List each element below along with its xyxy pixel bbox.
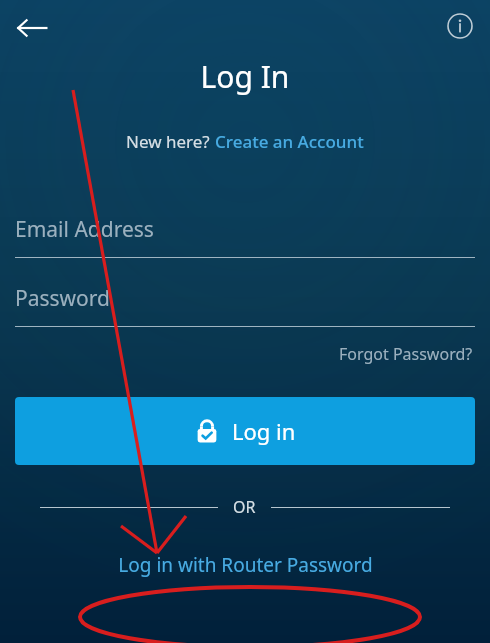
button[interactable]: Log in xyxy=(15,397,475,465)
button[interactable]: Information xyxy=(436,2,484,50)
staticText: Forgot Password? xyxy=(339,343,473,365)
staticText: Log in xyxy=(232,416,296,446)
button[interactable]: Back xyxy=(6,2,58,54)
button[interactable]: Email Address xyxy=(0,215,490,258)
button[interactable]: Password xyxy=(0,284,490,327)
staticText: Email Address xyxy=(15,215,154,244)
staticText: Password xyxy=(15,284,110,313)
staticText: New here? xyxy=(126,130,215,153)
button[interactable]: Create an Account xyxy=(215,130,364,153)
staticText: Log In xyxy=(0,56,490,97)
staticText: Log in with Router Password xyxy=(118,552,373,578)
staticText: OR xyxy=(233,496,256,518)
button[interactable]: Log in with Router Password xyxy=(0,552,490,578)
staticText: Create an Account xyxy=(215,130,364,153)
button[interactable]: Forgot Password? xyxy=(337,339,475,369)
